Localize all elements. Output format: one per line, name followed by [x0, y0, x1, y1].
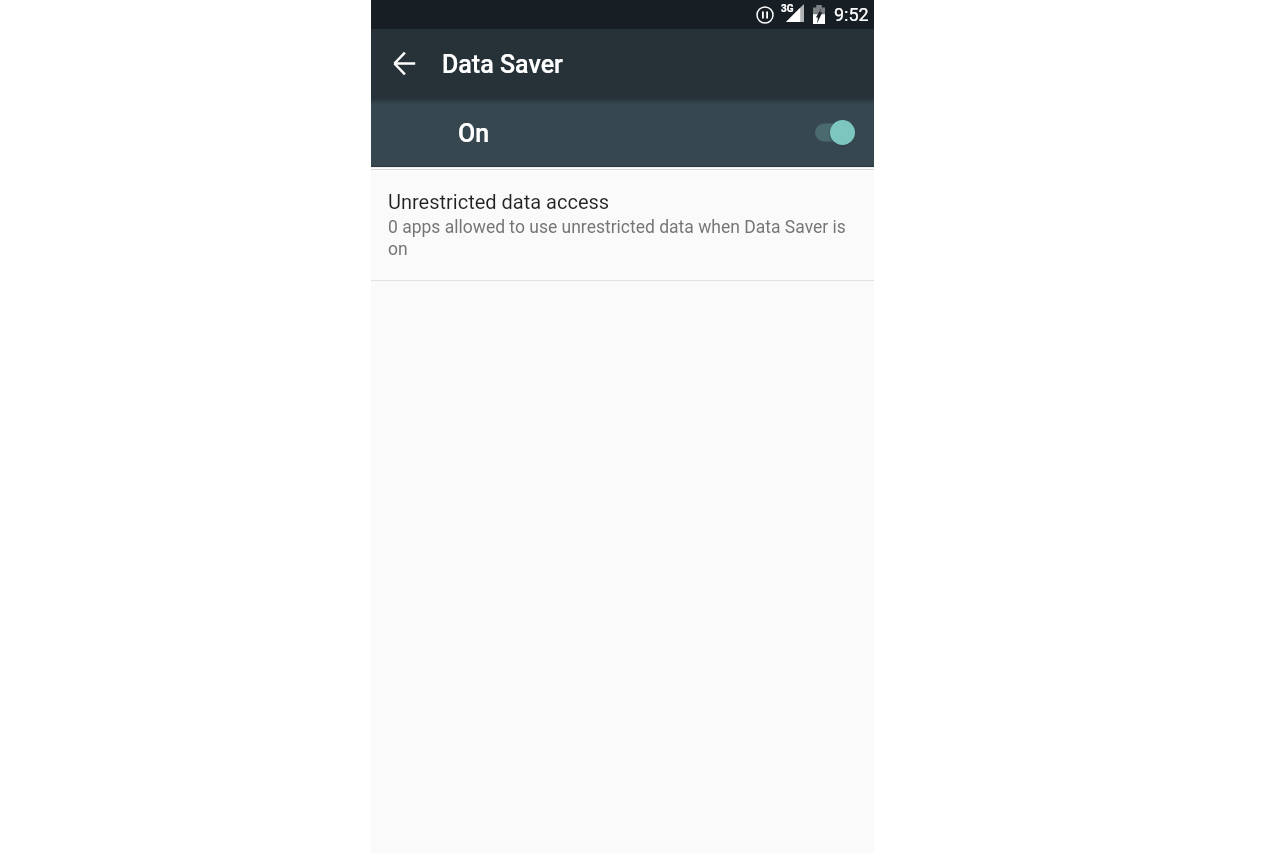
button[interactable]: On: [371, 98, 874, 166]
staticText: 0 apps allowed to use unrestricted data …: [388, 217, 846, 259]
staticText: 3G: [781, 3, 794, 15]
staticText: Data Saver: [442, 50, 563, 79]
button[interactable]: Data Saver on: [815, 120, 855, 145]
staticText: On: [458, 119, 490, 148]
staticText: 9:52: [834, 4, 869, 25]
button[interactable]: Unrestricted data access: [371, 172, 874, 280]
button[interactable]: Navigate up: [381, 41, 427, 87]
staticText: Unrestricted data access: [388, 190, 610, 213]
